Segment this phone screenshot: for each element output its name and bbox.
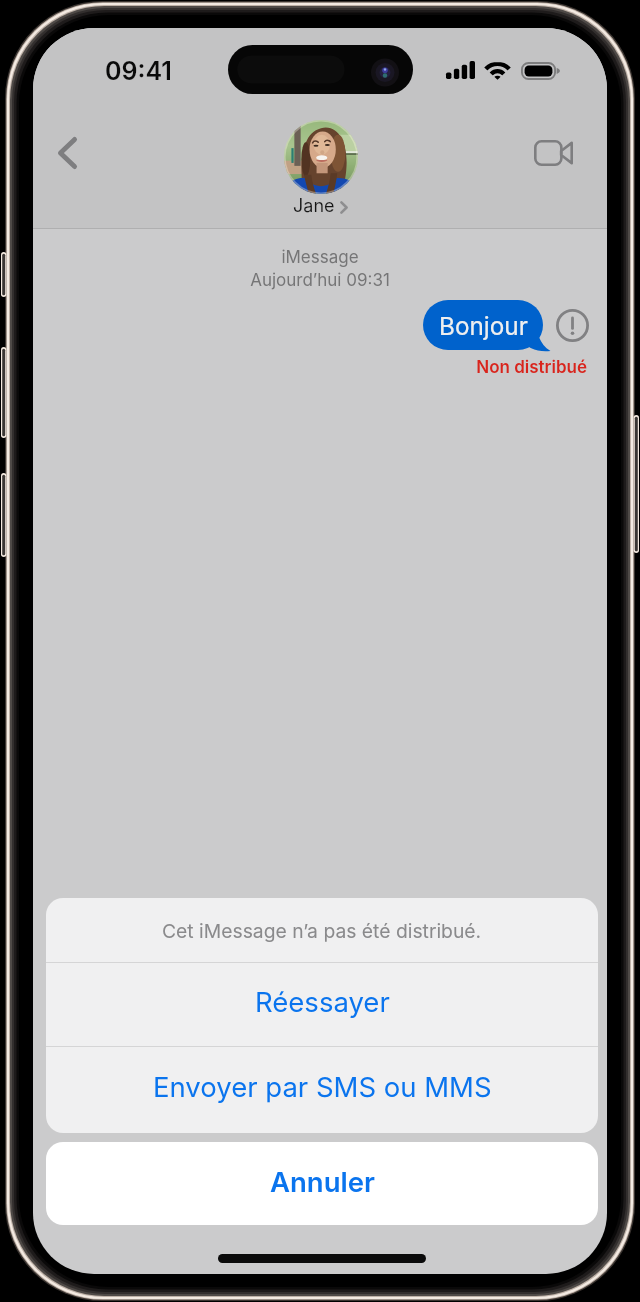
button[interactable]: Back: [33, 122, 101, 184]
staticText: Aujourd’hui 09:31: [33, 270, 607, 291]
button[interactable]: Message not delivered: [556, 309, 589, 342]
button[interactable]: Jane: [33, 195, 607, 217]
staticText: Bonjour: [439, 311, 528, 340]
staticText: Réessayer: [255, 985, 390, 1018]
button[interactable]: Annuler: [46, 1142, 598, 1225]
staticText: Annuler: [270, 1165, 375, 1198]
button[interactable]: Bonjour: [423, 300, 543, 350]
button[interactable]: Jane, contact photo: [284, 120, 358, 194]
staticText: Non distribué: [33, 357, 587, 378]
staticText: Envoyer par SMS ou MMS: [153, 1070, 492, 1103]
button[interactable]: FaceTime video call: [523, 127, 583, 179]
button[interactable]: Réessayer: [46, 963, 598, 1046]
staticText: iMessage: [33, 247, 607, 268]
staticText: 09:41: [105, 56, 172, 86]
staticText: Jane: [293, 195, 335, 217]
staticText: Cet iMessage n’a pas été distribué.: [162, 919, 482, 942]
button[interactable]: Envoyer par SMS ou MMS: [46, 1047, 598, 1133]
